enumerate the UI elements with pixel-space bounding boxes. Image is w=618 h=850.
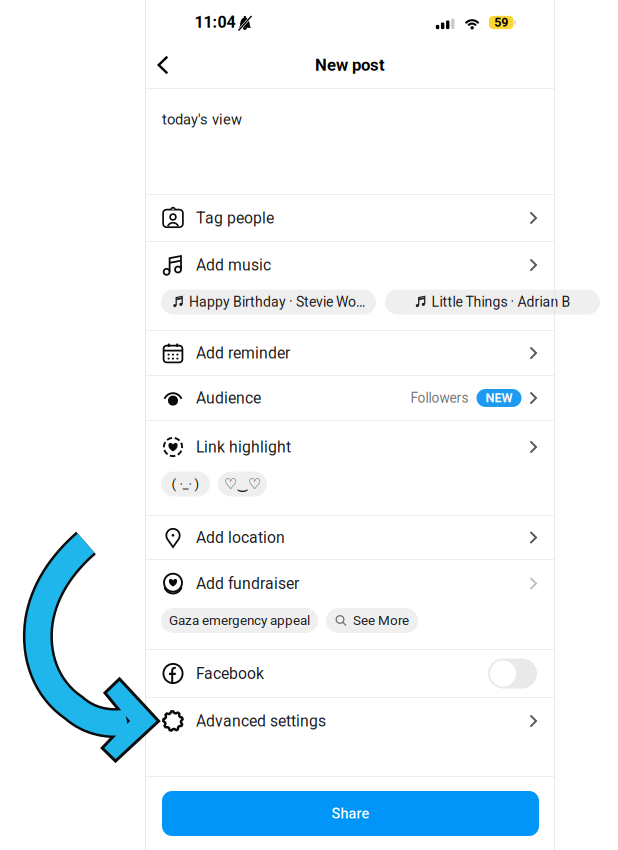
staticText: Facebook [196,664,264,683]
button[interactable]: Facebook [146,650,554,697]
button[interactable]: Add fundraiser [146,560,554,606]
staticText: Add reminder [196,344,290,362]
button[interactable]: Add location [146,516,554,559]
button[interactable]: Share [162,791,539,836]
button[interactable]: Add reminder [146,331,554,375]
button[interactable]: Tag people [146,195,554,241]
staticText: ♡‿♡ [224,475,261,493]
button[interactable]: Add music [146,242,554,288]
staticText: Tag people [196,209,274,227]
staticText: Add fundraiser [196,574,299,593]
button[interactable]: ( ·_· ) [161,471,210,496]
staticText: Add location [196,528,285,547]
button[interactable]: Advanced settings [146,698,554,744]
button[interactable]: Audience [146,376,554,420]
staticText: Advanced settings [196,712,326,730]
button[interactable]: Back [141,43,185,87]
staticText: Add music [196,256,271,274]
button[interactable]: Gaza emergency appeal [161,608,318,633]
button[interactable]: Link highlight [146,424,554,470]
staticText: Audience [196,389,261,407]
staticText: Gaza emergency appeal [169,613,310,628]
staticText: Share [331,805,369,822]
staticText: New post [315,55,385,75]
staticText: 11:04 [194,13,235,32]
staticText: Little Things · Adrian B [431,294,570,310]
staticText: Link highlight [196,438,291,456]
button[interactable]: Happy Birthday · Stevie Wo… [161,289,376,314]
staticText: 59 [494,15,508,30]
button[interactable]: Share to Facebook [488,658,537,688]
button[interactable]: Little Things · Adrian B [385,289,600,314]
staticText: NEW [485,391,512,405]
staticText: See More [353,613,409,628]
staticText: today's view [162,111,242,128]
staticText: Happy Birthday · Stevie Wo… [189,294,365,310]
staticText: ( ·_· ) [171,476,199,492]
button[interactable]: ♡‿♡ [218,471,267,496]
button[interactable]: See More [326,608,418,633]
staticText: Followers [410,390,468,406]
